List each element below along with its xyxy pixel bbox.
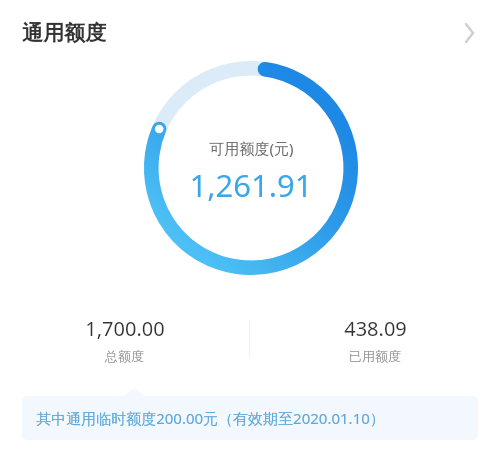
button[interactable]: 其中通用临时额度200.00元（有效期至2020.01.10）	[22, 396, 478, 440]
button[interactable]: 438.09	[250, 315, 500, 364]
staticText: 可用额度(元)	[209, 138, 294, 158]
staticText: 总额度	[105, 348, 144, 364]
staticText: 通用额度	[22, 20, 106, 46]
staticText: 438.09	[344, 315, 407, 342]
staticText: 已用额度	[349, 348, 401, 364]
staticText: 1,261.91	[189, 164, 313, 206]
staticText: 1,700.00	[85, 315, 165, 342]
button[interactable]: 1,700.00	[0, 315, 249, 364]
other: More	[456, 20, 482, 46]
staticText: 其中通用临时额度200.00元（有效期至2020.01.10）	[36, 408, 385, 428]
button[interactable]: 通用额度	[0, 0, 500, 66]
